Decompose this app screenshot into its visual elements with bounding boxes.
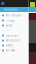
staticText: Social [6,24,13,27]
button[interactable]: Important [0,33,28,38]
button[interactable]: All inboxes [0,13,28,18]
staticText: All inboxes [6,14,22,17]
staticText: Primary [6,19,15,22]
staticText: Important [6,34,19,37]
button[interactable]: Scheduled [0,38,28,43]
staticText: ALL LABELS [2,30,11,31]
staticText: Scheduled [6,39,21,42]
button[interactable]: Drafts [0,43,28,48]
staticText: All mail [6,49,16,52]
button[interactable]: All mail [0,48,28,53]
staticText: Drafts [6,44,13,47]
button[interactable]: Primary [0,18,28,23]
button[interactable]: Social [0,23,28,28]
